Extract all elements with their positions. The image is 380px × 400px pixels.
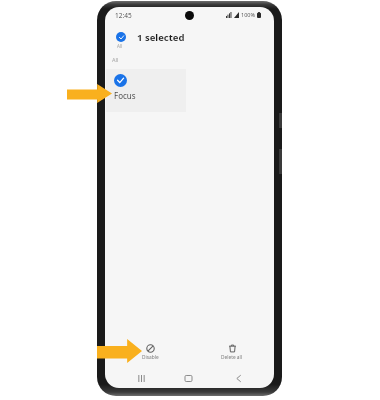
button[interactable]: Home — [181, 371, 196, 386]
staticText: All — [117, 43, 123, 49]
button[interactable]: Focus — [106, 69, 186, 112]
staticText: Focus — [114, 90, 136, 101]
staticText: Disable — [142, 354, 159, 361]
staticText: Delete all — [221, 354, 243, 361]
button[interactable]: Delete all — [212, 344, 252, 361]
button[interactable]: Recents — [134, 371, 149, 386]
staticText: 1 selected — [137, 31, 185, 44]
staticText: All — [112, 56, 119, 63]
staticText: 12:45 — [115, 11, 132, 20]
staticText: 100% — [241, 11, 256, 18]
button[interactable]: Disable — [130, 344, 170, 361]
button[interactable]: Back — [231, 371, 246, 386]
button[interactable]: All — [105, 25, 274, 53]
